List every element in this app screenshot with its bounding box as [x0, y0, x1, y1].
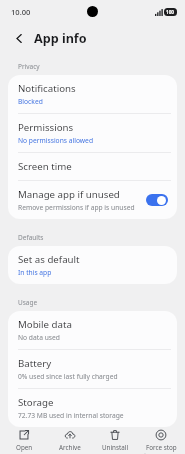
staticText: Set as default [18, 253, 80, 266]
staticText: Manage app if unused [18, 188, 120, 201]
staticText: In this app [18, 268, 52, 277]
staticText: Storage [18, 396, 54, 409]
button[interactable]: Notifications [8, 75, 177, 113]
staticText: 10.00 [11, 7, 31, 17]
button[interactable]: Permissions [8, 114, 177, 152]
staticText: Uninstall [102, 443, 129, 452]
staticText: Archive [59, 443, 81, 452]
button[interactable]: Open [2, 428, 46, 453]
staticText: Battery [18, 357, 52, 370]
button[interactable]: Set as default [8, 246, 177, 284]
staticText: 100 [166, 9, 175, 15]
button[interactable]: Manage app if unused [146, 194, 168, 206]
button[interactable]: Force stop [139, 428, 183, 453]
staticText: Open [16, 443, 33, 452]
staticText: No permissions allowed [18, 136, 93, 145]
staticText: No data used [18, 333, 60, 342]
staticText: App info [34, 30, 87, 47]
staticText: Screen time [18, 160, 72, 173]
staticText: Defaults [18, 233, 44, 242]
button[interactable]: Back [9, 28, 29, 48]
button[interactable]: Manage app if unused [8, 181, 177, 219]
staticText: Usage [18, 298, 38, 307]
button[interactable]: Uninstall [93, 428, 137, 453]
staticText: 0% used since last fully charged [18, 372, 118, 381]
button[interactable]: Battery [8, 350, 177, 388]
button[interactable]: Mobile data [8, 311, 177, 349]
button[interactable]: Storage [8, 389, 177, 427]
staticText: Mobile data [18, 318, 72, 331]
button[interactable]: Archive [48, 428, 92, 453]
staticText: Permissions [18, 121, 74, 134]
staticText: 72.73 MB used in internal storage [18, 411, 124, 420]
staticText: Force stop [146, 443, 177, 452]
staticText: Privacy [18, 62, 40, 71]
staticText: Remove permissions if app is unused [18, 203, 135, 212]
button[interactable]: Screen time [8, 153, 177, 180]
staticText: Notifications [18, 82, 76, 95]
staticText: Blocked [18, 97, 43, 106]
